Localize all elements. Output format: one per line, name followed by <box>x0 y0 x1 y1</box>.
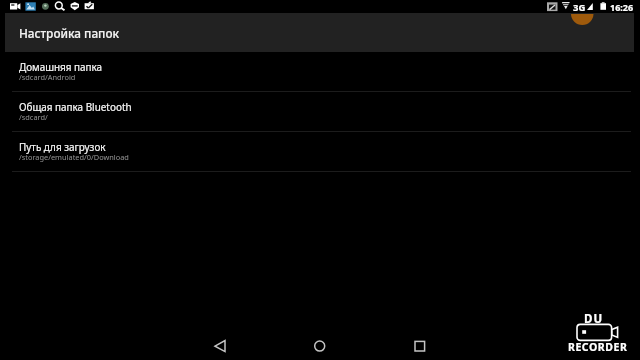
button[interactable]: Back <box>202 328 238 360</box>
staticText: RECORDER <box>568 340 628 354</box>
button[interactable]: Путь для загрузок <box>0 132 640 172</box>
button[interactable]: Recent apps <box>402 328 438 360</box>
staticText: Общая папка Bluetooth <box>19 100 132 113</box>
button[interactable]: Home <box>302 328 338 360</box>
staticText: Путь для загрузок <box>19 140 106 153</box>
staticText: /sdcard/Android <box>19 72 76 82</box>
staticText: 16:26 <box>610 1 634 13</box>
staticText: /storage/emulated/0/Download <box>19 152 129 162</box>
staticText: 3G <box>573 1 586 14</box>
button[interactable]: Домашняя папка <box>0 52 640 92</box>
staticText: Настройка папок <box>19 25 120 41</box>
staticText: DU <box>584 311 604 327</box>
button[interactable]: Общая папка Bluetooth <box>0 92 640 132</box>
staticText: Домашняя папка <box>19 60 103 73</box>
staticText: /sdcard/ <box>19 112 48 122</box>
button[interactable]: Screen recorder control <box>571 14 594 26</box>
